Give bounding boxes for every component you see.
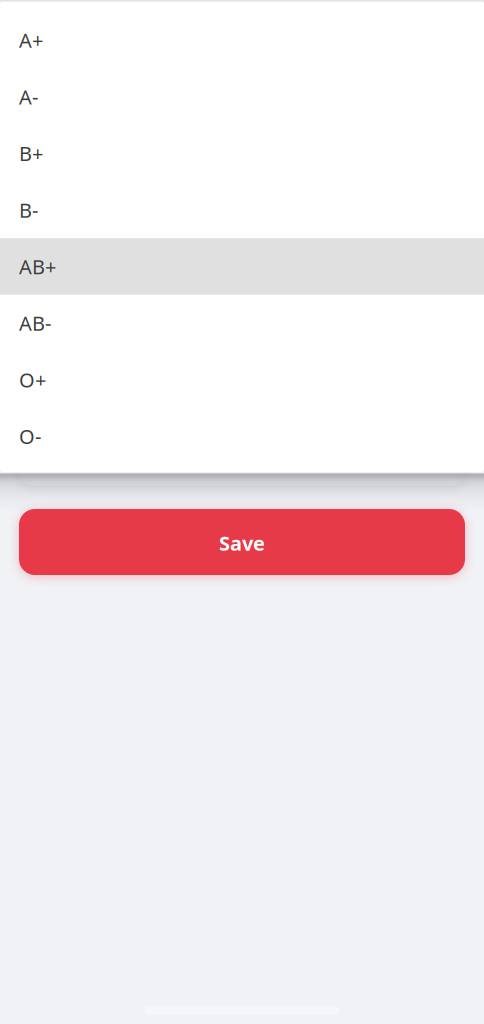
button[interactable]: A- [0,68,484,125]
button[interactable]: A+ [0,12,484,68]
button[interactable]: B- [0,182,484,238]
staticText: O+ [19,366,46,393]
staticText: B+ [19,140,43,167]
staticText: Save [219,530,265,556]
button[interactable]: AB+ [0,238,484,295]
button[interactable]: O+ [0,351,484,408]
staticText: A+ [19,27,43,53]
button[interactable]: B+ [0,125,484,182]
button[interactable]: Save [19,509,465,575]
staticText: A- [19,83,38,110]
staticText: O- [19,423,41,450]
staticText: B- [19,197,38,223]
staticText: AB- [19,310,51,336]
staticText: AB+ [19,253,56,280]
button[interactable]: O- [0,408,484,465]
button[interactable]: AB- [0,295,484,351]
